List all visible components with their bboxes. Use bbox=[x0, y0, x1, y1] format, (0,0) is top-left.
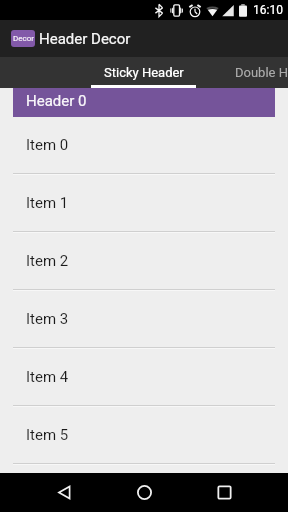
button[interactable]: Recent apps bbox=[198, 473, 250, 512]
button[interactable]: Sticky Header bbox=[91, 57, 196, 88]
staticText: Decor bbox=[13, 34, 34, 43]
button[interactable]: Item 0 bbox=[0, 117, 288, 173]
staticText: Sticky Header bbox=[104, 65, 184, 80]
staticText: Item 2 bbox=[26, 252, 69, 270]
staticText: Item 4 bbox=[26, 368, 69, 386]
button[interactable]: App icon bbox=[11, 30, 35, 47]
staticText: Item 5 bbox=[26, 426, 69, 444]
staticText: 16:10 bbox=[253, 3, 283, 17]
button[interactable]: Item 1 bbox=[0, 175, 288, 231]
button[interactable]: Double Header bbox=[196, 57, 288, 88]
button[interactable]: Item 2 bbox=[0, 233, 288, 289]
staticText: Header 0 bbox=[26, 92, 87, 110]
staticText: Header Decor bbox=[39, 30, 131, 48]
staticText: Item 1 bbox=[26, 194, 69, 212]
button[interactable]: Item 3 bbox=[0, 291, 288, 347]
staticText: Item 3 bbox=[26, 310, 69, 328]
button[interactable]: Item 4 bbox=[0, 349, 288, 405]
button[interactable]: Item 5 bbox=[0, 407, 288, 463]
staticText: Double Header bbox=[235, 65, 288, 80]
button[interactable]: Header 0 bbox=[13, 88, 275, 117]
button[interactable]: Home bbox=[118, 473, 170, 512]
button[interactable]: Back bbox=[38, 473, 90, 512]
staticText: Item 0 bbox=[26, 136, 69, 154]
